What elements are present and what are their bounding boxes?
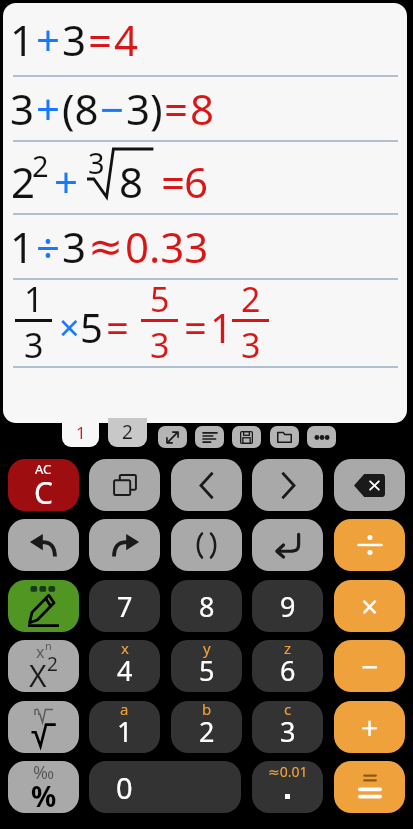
staticText: 3	[150, 322, 170, 368]
button[interactable]: 9	[252, 580, 323, 632]
staticText: =	[161, 153, 186, 210]
button[interactable]: 8	[171, 580, 242, 632]
staticText: AC	[35, 460, 52, 478]
staticText: 0.33	[125, 218, 209, 275]
button[interactable]: 1	[62, 418, 99, 447]
button[interactable]: 7	[89, 580, 160, 632]
button[interactable]: Undo	[8, 519, 79, 571]
staticText: a	[120, 701, 129, 719]
button[interactable]: Power	[8, 640, 79, 692]
staticText: 0	[116, 768, 133, 807]
button[interactable]: Parentheses	[171, 519, 242, 571]
button[interactable]: Plus	[334, 701, 405, 753]
staticText: =	[164, 80, 189, 137]
button[interactable]: Edit	[8, 580, 79, 632]
staticText: ×	[59, 303, 80, 352]
staticText: 2	[122, 419, 133, 445]
button[interactable]: Backspace	[334, 459, 405, 511]
staticText: z	[284, 640, 292, 658]
button[interactable]: y	[171, 640, 242, 692]
staticText: 4	[117, 652, 133, 689]
staticText: +	[361, 707, 379, 748]
staticText: x	[36, 641, 45, 663]
button[interactable]: Move right	[252, 459, 323, 511]
button[interactable]: Copy	[89, 459, 160, 511]
staticText: 7	[117, 588, 133, 625]
staticText: 1	[10, 218, 35, 275]
staticText: c	[284, 701, 292, 719]
button[interactable]: Multiply	[334, 580, 405, 632]
staticText: =	[106, 300, 129, 354]
staticText: %	[31, 777, 57, 813]
button[interactable]: Equals	[334, 761, 405, 813]
button[interactable]: 1	[10, 3, 407, 76]
button[interactable]: Save	[232, 426, 261, 448]
staticText: 1	[76, 421, 86, 444]
button[interactable]: Divide	[334, 519, 405, 571]
button[interactable]: 3	[10, 76, 407, 141]
staticText: 3	[241, 322, 261, 368]
button[interactable]: a	[89, 701, 160, 753]
staticText: 8	[119, 153, 144, 203]
staticText: 1	[210, 300, 233, 354]
button[interactable]: All clear	[8, 459, 79, 511]
button[interactable]: z	[252, 640, 323, 692]
button[interactable]: 1	[10, 279, 407, 367]
button[interactable]: Expand	[158, 426, 187, 448]
staticText: (8	[62, 80, 99, 137]
staticText: 6	[280, 652, 296, 689]
button[interactable]: 2	[10, 141, 407, 214]
button[interactable]: 1	[10, 214, 407, 279]
button[interactable]: Move left	[171, 459, 242, 511]
staticText: =	[88, 11, 113, 68]
staticText: 3	[88, 143, 105, 182]
staticText: 3	[62, 218, 87, 275]
staticText: +	[36, 11, 61, 68]
staticText: C	[34, 472, 53, 511]
button[interactable]: 0	[89, 761, 241, 813]
staticText: ÷	[36, 218, 61, 275]
button[interactable]: Square root	[8, 701, 79, 753]
staticText: 3)	[126, 80, 163, 137]
staticText: 1	[10, 11, 35, 68]
staticText: x	[121, 640, 129, 658]
staticText: X	[29, 655, 47, 692]
staticText: 1	[117, 713, 133, 750]
staticText: 5	[150, 276, 170, 322]
staticText: 3	[280, 713, 296, 750]
staticText: 5	[199, 652, 215, 689]
staticText: 2	[32, 146, 49, 185]
button[interactable]: Format	[195, 426, 224, 448]
staticText: 5	[80, 300, 103, 354]
button[interactable]: Minus	[334, 640, 405, 692]
button[interactable]: b	[171, 701, 242, 753]
staticText: b	[202, 701, 212, 719]
button[interactable]: Open	[270, 426, 299, 448]
staticText: 3	[10, 80, 35, 137]
staticText: 9	[280, 588, 296, 625]
staticText: 6	[184, 153, 209, 210]
button[interactable]: Enter	[252, 519, 323, 571]
button[interactable]: c	[252, 701, 323, 753]
button[interactable]: Percent	[8, 761, 79, 813]
staticText: 8	[190, 80, 215, 137]
button[interactable]: 2	[108, 418, 147, 447]
staticText: +	[36, 80, 61, 137]
staticText: 2	[241, 276, 261, 322]
staticText: y	[203, 640, 211, 658]
staticText: 2	[47, 651, 58, 677]
button[interactable]: ≈0.01	[252, 761, 323, 813]
staticText: ≈0.01	[268, 762, 308, 781]
staticText: 3	[24, 322, 44, 368]
button[interactable]: x	[89, 640, 160, 692]
button[interactable]: Redo	[89, 519, 160, 571]
staticText: 3	[62, 11, 87, 68]
staticText: =	[184, 300, 207, 354]
staticText: −	[100, 80, 125, 137]
staticText: +	[54, 153, 79, 210]
staticText: ≈	[88, 222, 124, 271]
button[interactable]: More	[307, 426, 336, 448]
staticText: ‰	[33, 761, 55, 785]
staticText: 1	[24, 276, 44, 322]
staticText: n	[45, 640, 52, 653]
